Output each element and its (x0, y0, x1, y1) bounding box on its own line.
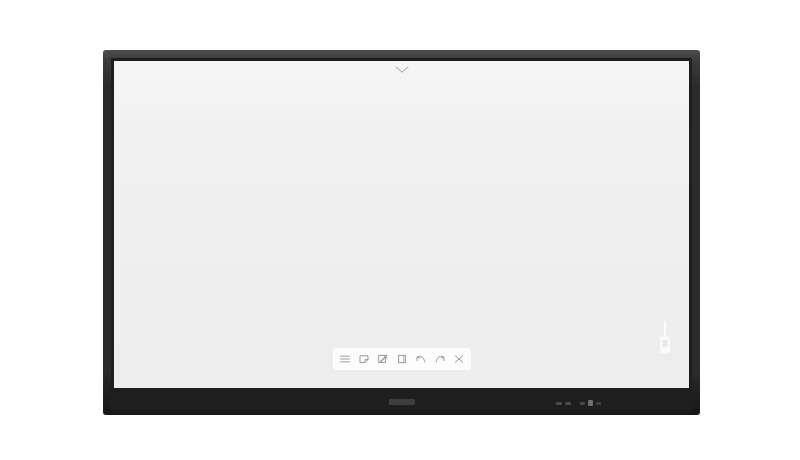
button[interactable]: Menu (337, 349, 353, 369)
other: Pen (659, 322, 671, 356)
button[interactable]: Redo (432, 349, 448, 369)
button[interactable]: Close (451, 349, 467, 369)
button[interactable]: Tools (375, 349, 391, 369)
button[interactable]: Undo (413, 349, 429, 369)
button[interactable]: Page (394, 349, 410, 369)
button[interactable]: New note (356, 349, 372, 369)
button[interactable]: Open menu (387, 63, 417, 75)
